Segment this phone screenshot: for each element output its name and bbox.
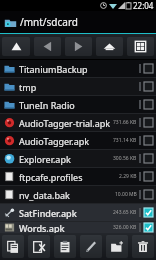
button[interactable]: Select TuneIn Radio: [144, 100, 153, 109]
button[interactable]: Select Explorer.apk: [144, 154, 153, 163]
button[interactable]: Explorer.apk: [0, 150, 156, 167]
staticText: 243.65 KB: [113, 209, 137, 216]
button[interactable]: View mode: [127, 37, 154, 56]
staticText: TuneIn Radio: [19, 99, 139, 111]
button[interactable]: Rename: [80, 235, 102, 258]
staticText: AudioTagger-trial.apk: [19, 117, 113, 129]
button[interactable]: TitaniumBackup: [0, 60, 156, 77]
button[interactable]: AudioTagger-trial.apk: [0, 114, 156, 131]
staticText: nv_data.bak: [19, 189, 115, 201]
button[interactable]: Select nv_data.bak: [144, 190, 153, 199]
staticText: AudioTagger.apk: [19, 135, 113, 147]
button[interactable]: New folder: [106, 235, 128, 258]
button[interactable]: Select ftpcafe.profiles: [144, 172, 153, 181]
button[interactable]: SatFinder.apk: [0, 204, 156, 221]
button[interactable]: Copy: [2, 235, 24, 258]
staticText: 2.29 KB: [119, 173, 137, 180]
button[interactable]: nv_data.bak: [0, 186, 156, 203]
button[interactable]: Delete: [132, 235, 154, 258]
button[interactable]: Up: [2, 37, 30, 56]
button[interactable]: Select TitaniumBackup: [144, 64, 153, 73]
button[interactable]: Home: [96, 37, 123, 56]
staticText: /mnt/sdcard: [20, 15, 79, 29]
button[interactable]: Select AudioTagger-trial.apk: [144, 118, 153, 127]
button[interactable]: Words.apk: [0, 222, 156, 233]
staticText: 731.14 KB: [113, 137, 137, 144]
staticText: tmp: [19, 81, 139, 93]
staticText: 10.00 MB: [115, 191, 137, 198]
staticText: SatFinder.apk: [19, 207, 113, 219]
staticText: 326.00 KB: [113, 224, 137, 231]
button[interactable]: TuneIn Radio: [0, 96, 156, 113]
button[interactable]: Select tmp: [144, 82, 153, 91]
staticText: 22:04: [133, 0, 154, 11]
staticText: ftpcafe.profiles: [19, 171, 119, 183]
button[interactable]: Paste: [54, 235, 76, 258]
button[interactable]: AudioTagger.apk: [0, 132, 156, 149]
staticText: Words.apk: [19, 222, 113, 233]
button[interactable]: tmp: [0, 78, 156, 95]
button[interactable]: Forward: [65, 37, 92, 56]
button[interactable]: ftpcafe.profiles: [0, 168, 156, 185]
button[interactable]: Select SatFinder.apk: [144, 208, 153, 217]
staticText: TitaniumBackup: [19, 63, 139, 75]
staticText: 300.56 KB: [113, 155, 137, 162]
staticText: 731.66 KB: [113, 119, 137, 126]
button[interactable]: Back: [34, 37, 61, 56]
button[interactable]: Select Words.apk: [144, 223, 153, 232]
staticText: Explorer.apk: [19, 153, 113, 165]
button[interactable]: Select AudioTagger.apk: [144, 136, 153, 145]
button[interactable]: Cut: [28, 235, 50, 258]
